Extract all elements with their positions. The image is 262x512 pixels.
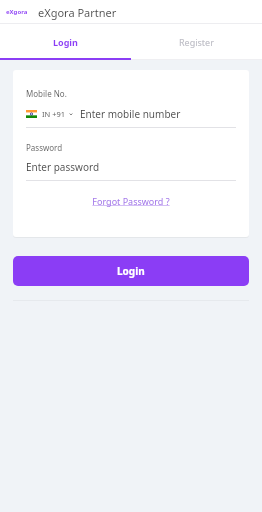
- button[interactable]: Register: [131, 24, 262, 60]
- button[interactable]: IN +91: [26, 107, 236, 121]
- staticText: Password: [26, 142, 63, 153]
- button[interactable]: Login: [13, 256, 249, 286]
- staticText: Register: [179, 36, 214, 48]
- button[interactable]: Login: [0, 24, 131, 60]
- staticText: Forgot Password ?: [92, 195, 170, 207]
- staticText: Enter mobile number: [80, 107, 181, 121]
- staticText: Login: [53, 36, 78, 48]
- button[interactable]: Enter password: [26, 160, 236, 174]
- staticText: IN +91: [42, 109, 66, 119]
- staticText: Enter password: [26, 160, 100, 174]
- staticText: eXgora Partner: [38, 5, 117, 20]
- staticText: Login: [117, 264, 145, 278]
- staticText: Mobile No.: [26, 88, 67, 99]
- staticText: eXgora: [6, 8, 28, 16]
- button[interactable]: Forgot Password ?: [92, 195, 170, 207]
